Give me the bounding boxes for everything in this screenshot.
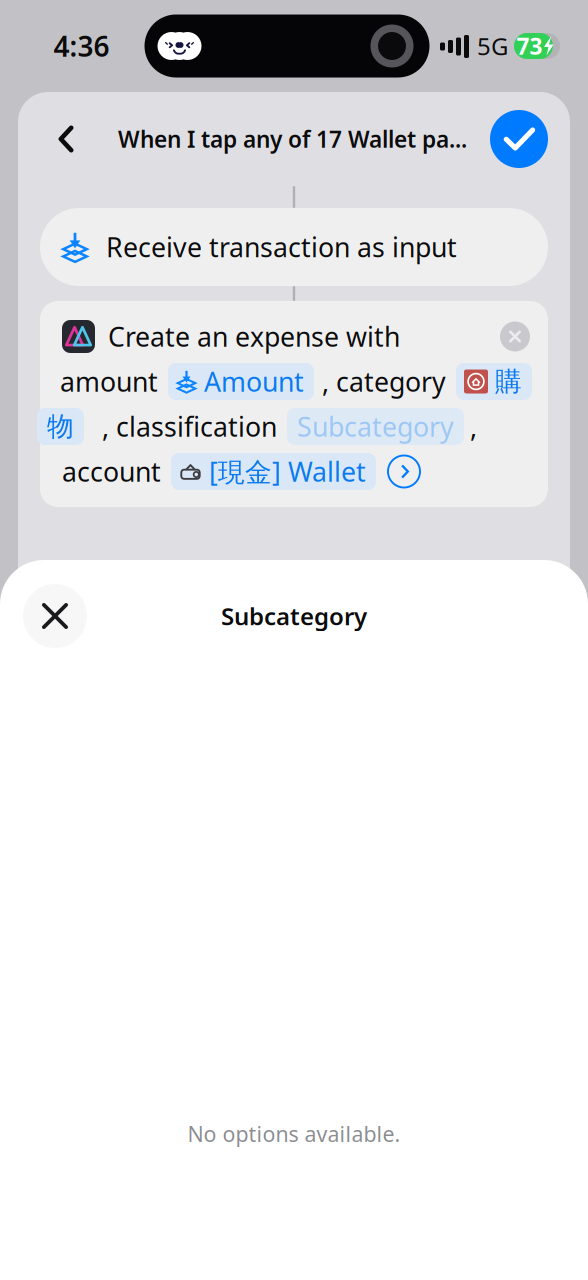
staticText: 購 <box>495 365 522 398</box>
button[interactable]: Close <box>23 584 87 648</box>
button[interactable]: Receive transaction as input <box>40 208 548 286</box>
staticText: 5G <box>477 30 508 62</box>
button[interactable]: Create an expense with <box>40 301 548 507</box>
staticText: amount <box>60 364 158 399</box>
staticText: Create an expense with <box>108 319 400 354</box>
button[interactable]: Back <box>40 113 92 165</box>
staticText: account <box>62 454 161 489</box>
staticText: Subcategory <box>221 600 367 632</box>
staticText: When I tap any of 17 Wallet pa... <box>118 124 467 154</box>
staticText: 73 <box>516 31 542 61</box>
staticText: , classification <box>102 409 277 444</box>
staticText: Amount <box>204 364 304 399</box>
staticText: 4:36 <box>53 27 109 65</box>
staticText: 物 <box>47 410 74 443</box>
button[interactable]: Done <box>490 110 548 168</box>
staticText: , <box>470 409 477 444</box>
staticText: Subcategory <box>297 409 454 444</box>
staticText: [現金] Wallet <box>209 454 366 489</box>
staticText: , category <box>322 364 446 399</box>
staticText: Receive transaction as input <box>106 229 457 265</box>
staticText: No options available. <box>187 1120 400 1148</box>
